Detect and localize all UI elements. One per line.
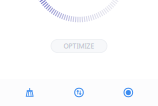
button[interactable]: OPTIMIZE — [51, 39, 107, 52]
staticText: OPTIMIZE — [63, 42, 94, 50]
button[interactable]: Speed — [54, 87, 104, 98]
button[interactable]: Secure — [104, 87, 153, 98]
button[interactable]: Clean — [5, 87, 54, 98]
